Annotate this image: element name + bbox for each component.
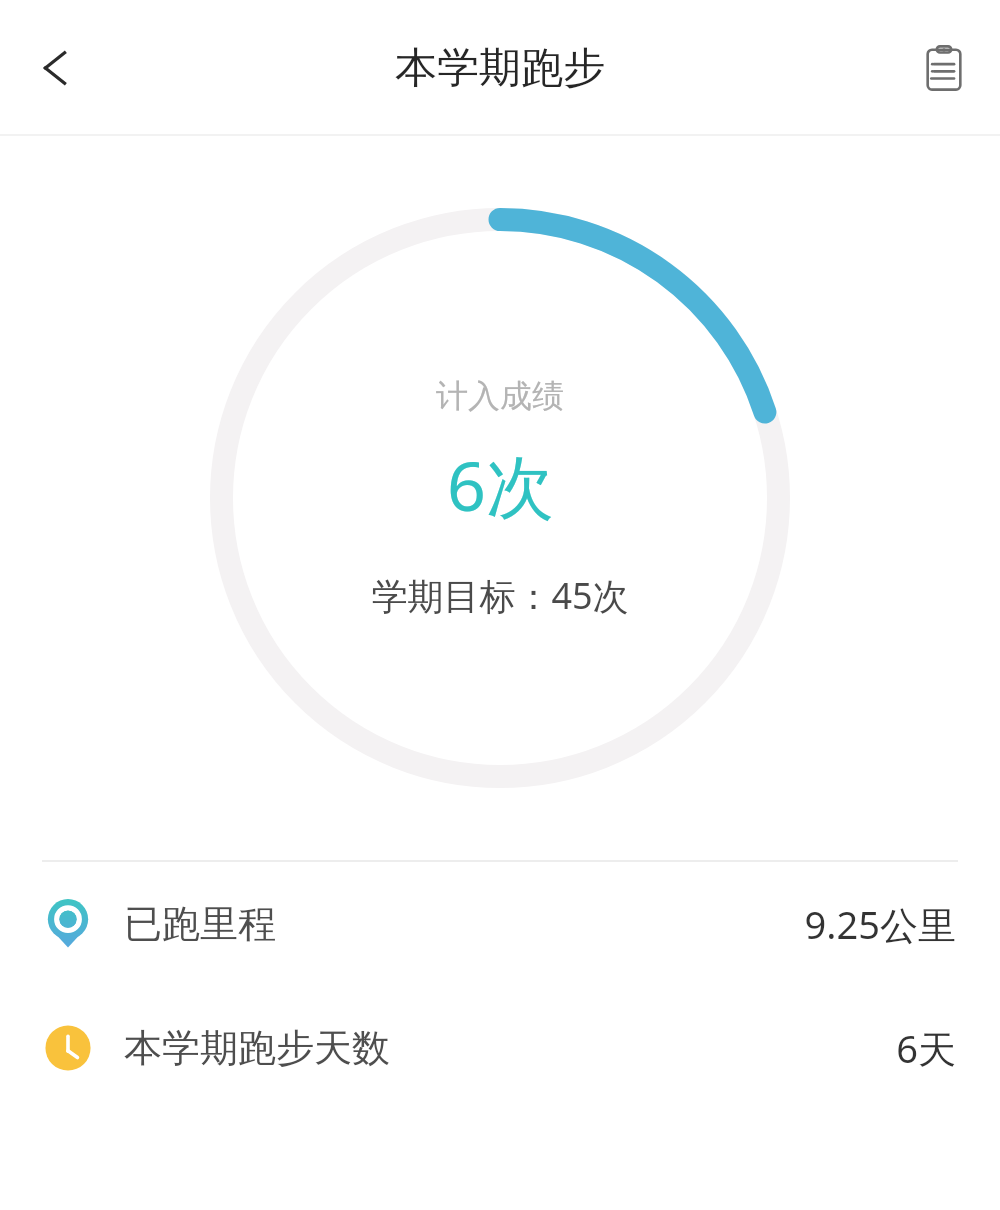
staticText: 学期目标：45次 — [371, 571, 629, 620]
staticText: 本学期跑步天数 — [124, 1024, 390, 1072]
staticText: 本学期跑步 — [395, 42, 605, 95]
staticText: 6次 — [447, 438, 554, 531]
button[interactable]: 已跑里程 — [0, 862, 1000, 986]
staticText: 计入成绩 — [436, 376, 564, 416]
button[interactable]: Record list — [906, 30, 982, 106]
staticText: 9.25公里 — [804, 898, 956, 950]
staticText: 6天 — [896, 1022, 956, 1074]
button[interactable]: 本学期跑步天数 — [0, 986, 1000, 1110]
staticText: 已跑里程 — [124, 900, 276, 948]
button[interactable]: Back — [18, 31, 92, 105]
